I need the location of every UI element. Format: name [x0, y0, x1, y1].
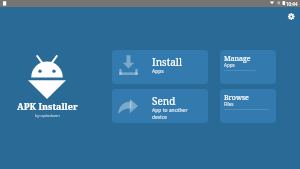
- staticText: Send: [152, 94, 176, 108]
- button[interactable]: Send app: [112, 89, 208, 123]
- staticText: App to another device: [152, 107, 188, 120]
- staticText: Install: [152, 55, 182, 69]
- staticText: Apps: [152, 68, 164, 75]
- staticText: Files: [224, 101, 234, 107]
- staticText: 10:44: [286, 1, 298, 7]
- staticText: by uptodown: [35, 113, 60, 118]
- staticText: Apps: [224, 62, 235, 68]
- staticText: Browse: [224, 93, 249, 103]
- staticText: Manage: [224, 54, 251, 64]
- other: Send app: [118, 99, 139, 115]
- button[interactable]: Settings: [286, 11, 297, 22]
- other: Install apps: [119, 55, 138, 75]
- button[interactable]: Install apps: [112, 50, 208, 84]
- button[interactable]: Browse: [220, 89, 276, 123]
- staticText: APK Installer: [17, 100, 78, 112]
- button[interactable]: Manage: [220, 50, 276, 84]
